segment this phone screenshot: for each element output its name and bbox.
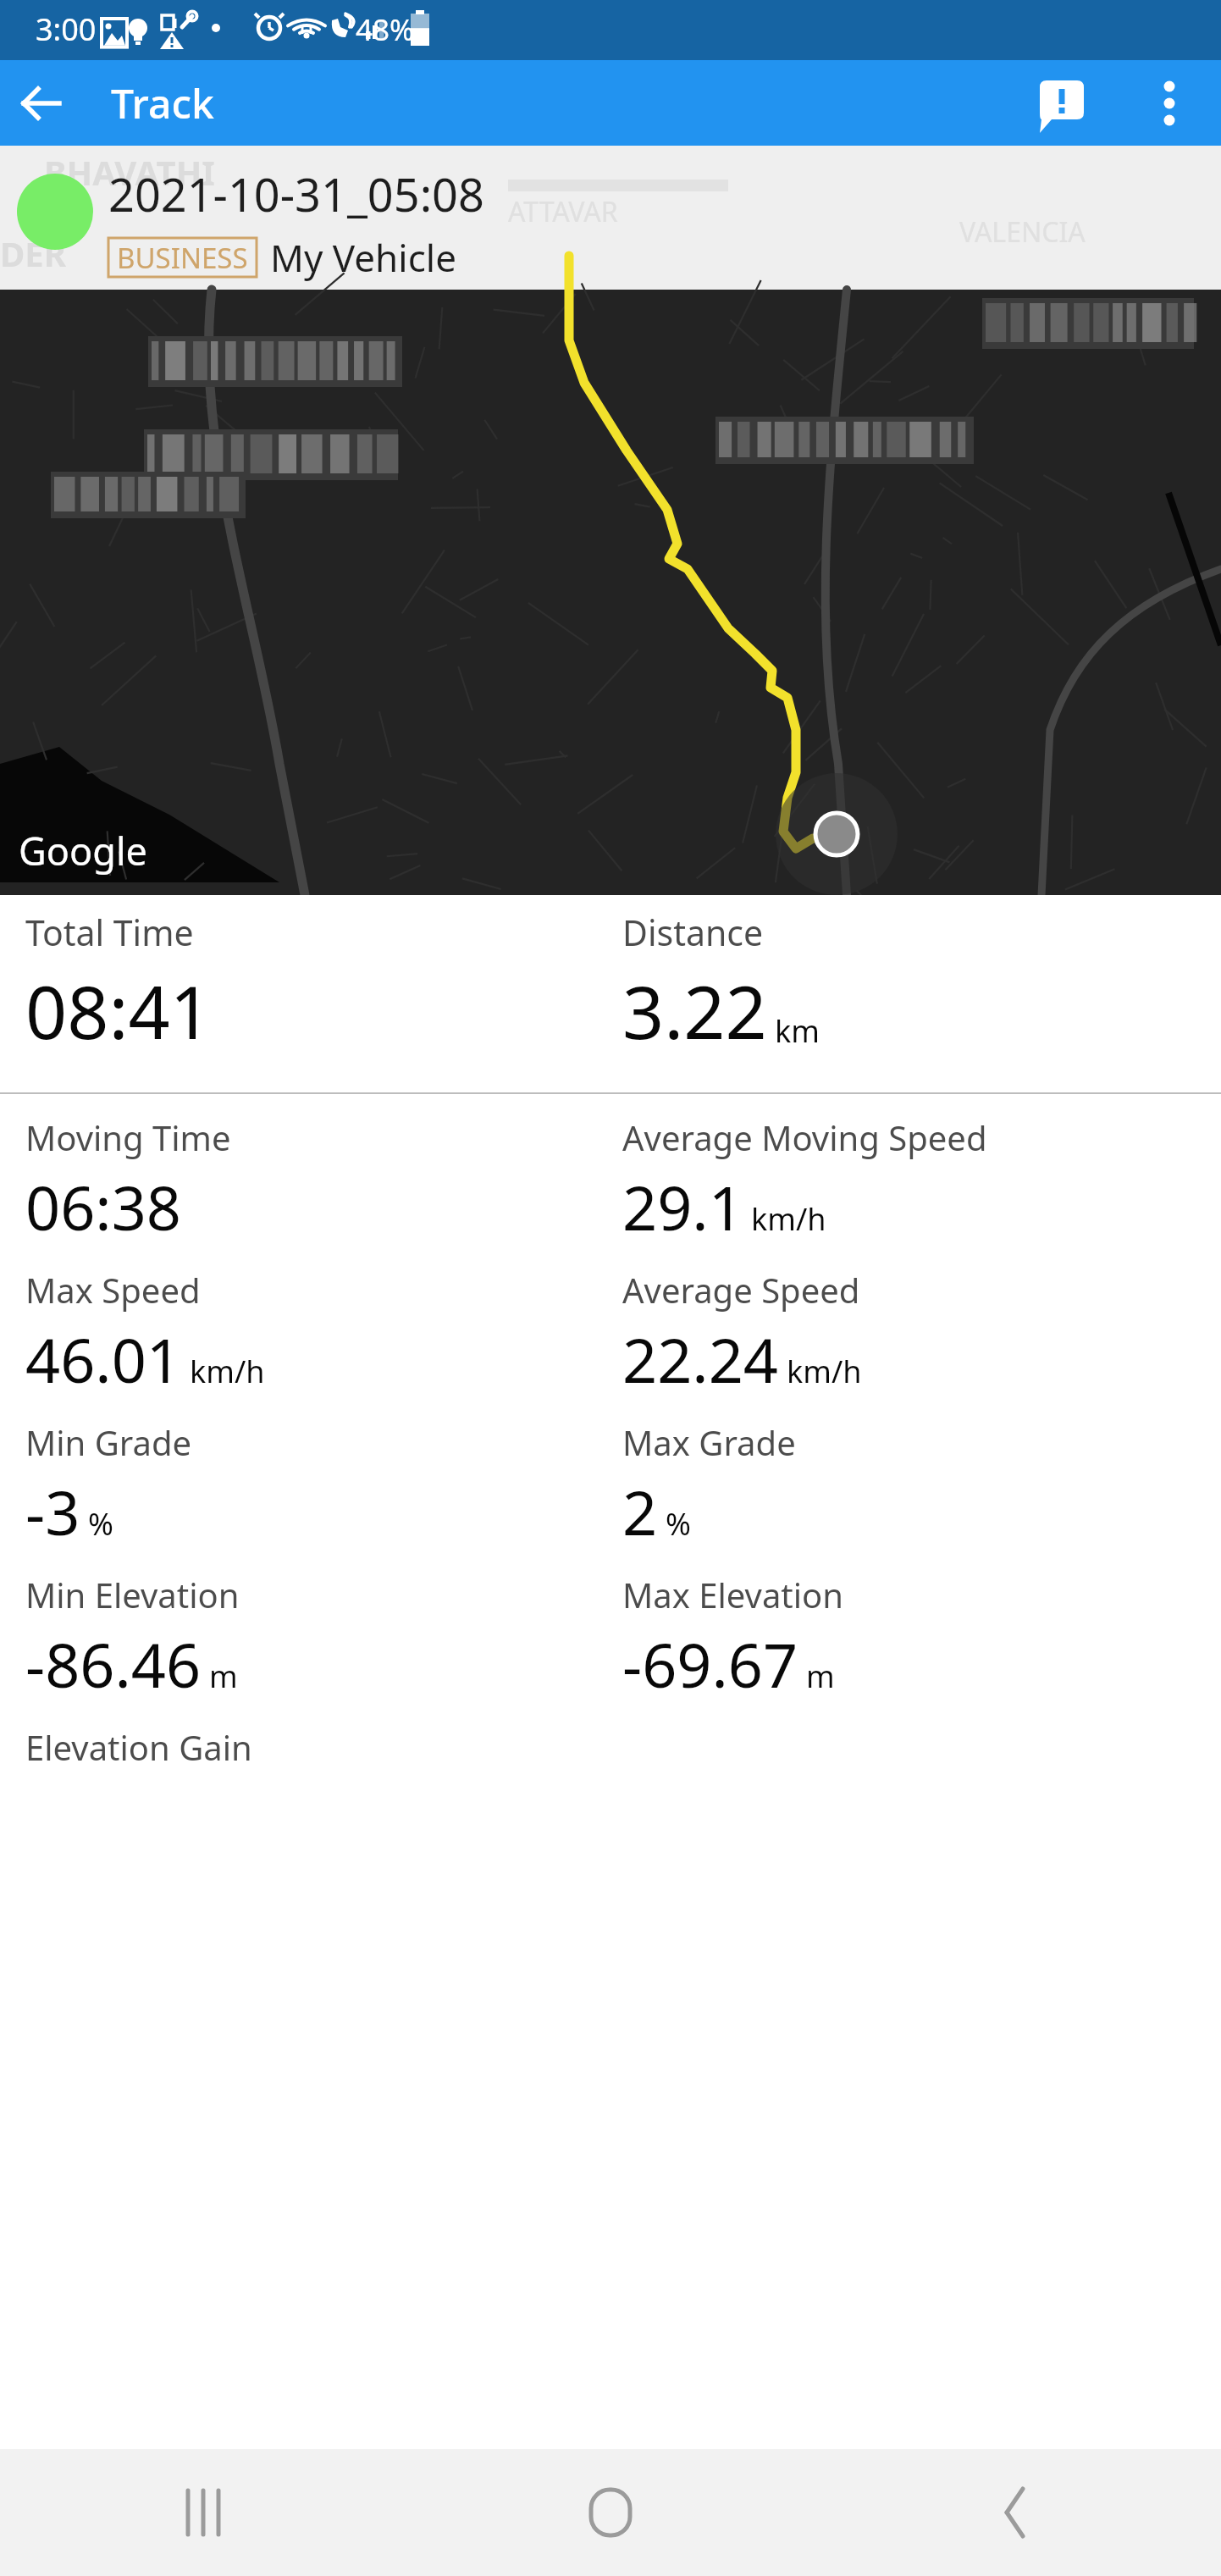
button[interactable]: Total Time: [25, 909, 610, 1060]
staticText: %: [88, 1503, 113, 1545]
staticText: -69.67: [622, 1622, 798, 1705]
button[interactable]: Max Speed: [25, 1267, 610, 1401]
staticText: -86.46: [25, 1622, 202, 1705]
button[interactable]: Min Grade: [25, 1419, 610, 1553]
button[interactable]: More options: [1136, 70, 1202, 136]
staticText: m: [209, 1656, 238, 1697]
staticText: 2: [622, 1470, 658, 1553]
staticText: 2021-10-31_05:08: [108, 163, 484, 225]
staticText: Min Elevation: [25, 1572, 240, 1617]
button[interactable]: Feedback: [1025, 67, 1097, 140]
button[interactable]: Min Elevation: [25, 1572, 610, 1705]
staticText: km/h: [751, 1198, 826, 1240]
button[interactable]: Average Speed: [622, 1267, 1221, 1401]
staticText: Min Grade: [25, 1419, 192, 1465]
staticText: Elevation Gain: [25, 1724, 252, 1770]
staticText: 31/10/2021 5:08 am - 31/10/2021 5:17 am: [108, 288, 670, 290]
staticText: ATTAVAR: [508, 193, 618, 230]
staticText: VALENCIA: [959, 213, 1086, 251]
staticText: %: [666, 1503, 691, 1545]
button[interactable]: Max Elevation: [622, 1572, 1221, 1705]
button[interactable]: Recents: [140, 2449, 267, 2576]
staticText: BUSINESS: [117, 239, 248, 277]
staticText: m: [806, 1656, 835, 1697]
staticText: Max Elevation: [622, 1572, 844, 1617]
button[interactable]: Home: [547, 2449, 674, 2576]
staticText: Track: [111, 75, 214, 130]
staticText: Distance: [622, 909, 764, 956]
staticText: Moving Time: [25, 1114, 231, 1160]
staticText: My Vehicle: [270, 232, 456, 283]
staticText: Average Moving Speed: [622, 1114, 987, 1160]
button[interactable]: Average Moving Speed: [622, 1114, 1221, 1248]
staticText: 29.1: [622, 1165, 743, 1248]
staticText: -3: [25, 1470, 80, 1553]
button[interactable]: Moving Time: [25, 1114, 610, 1248]
button[interactable]: Back: [12, 71, 76, 135]
staticText: Total Time: [25, 909, 194, 956]
staticText: Google: [19, 825, 147, 876]
button[interactable]: Max Grade: [622, 1419, 1221, 1553]
staticText: BHAVATHI: [44, 149, 215, 195]
staticText: Average Speed: [622, 1267, 860, 1313]
staticText: 22.24: [622, 1318, 779, 1401]
button[interactable]: Back: [954, 2449, 1081, 2576]
staticText: 3:00: [36, 8, 97, 50]
staticText: km: [775, 1010, 820, 1052]
button[interactable]: BHAVATHI: [0, 146, 1221, 290]
staticText: 06:38: [25, 1165, 182, 1248]
staticText: km/h: [190, 1351, 265, 1392]
staticText: 48%: [356, 9, 415, 50]
staticText: 08:41: [25, 961, 212, 1060]
staticText: 3.22: [622, 961, 767, 1060]
staticText: DER: [0, 230, 66, 276]
staticText: km/h: [787, 1351, 862, 1392]
staticText: Max Speed: [25, 1267, 201, 1313]
button[interactable]: Distance: [622, 909, 1221, 1060]
staticText: 46.01: [25, 1318, 182, 1401]
staticText: Max Grade: [622, 1419, 796, 1465]
